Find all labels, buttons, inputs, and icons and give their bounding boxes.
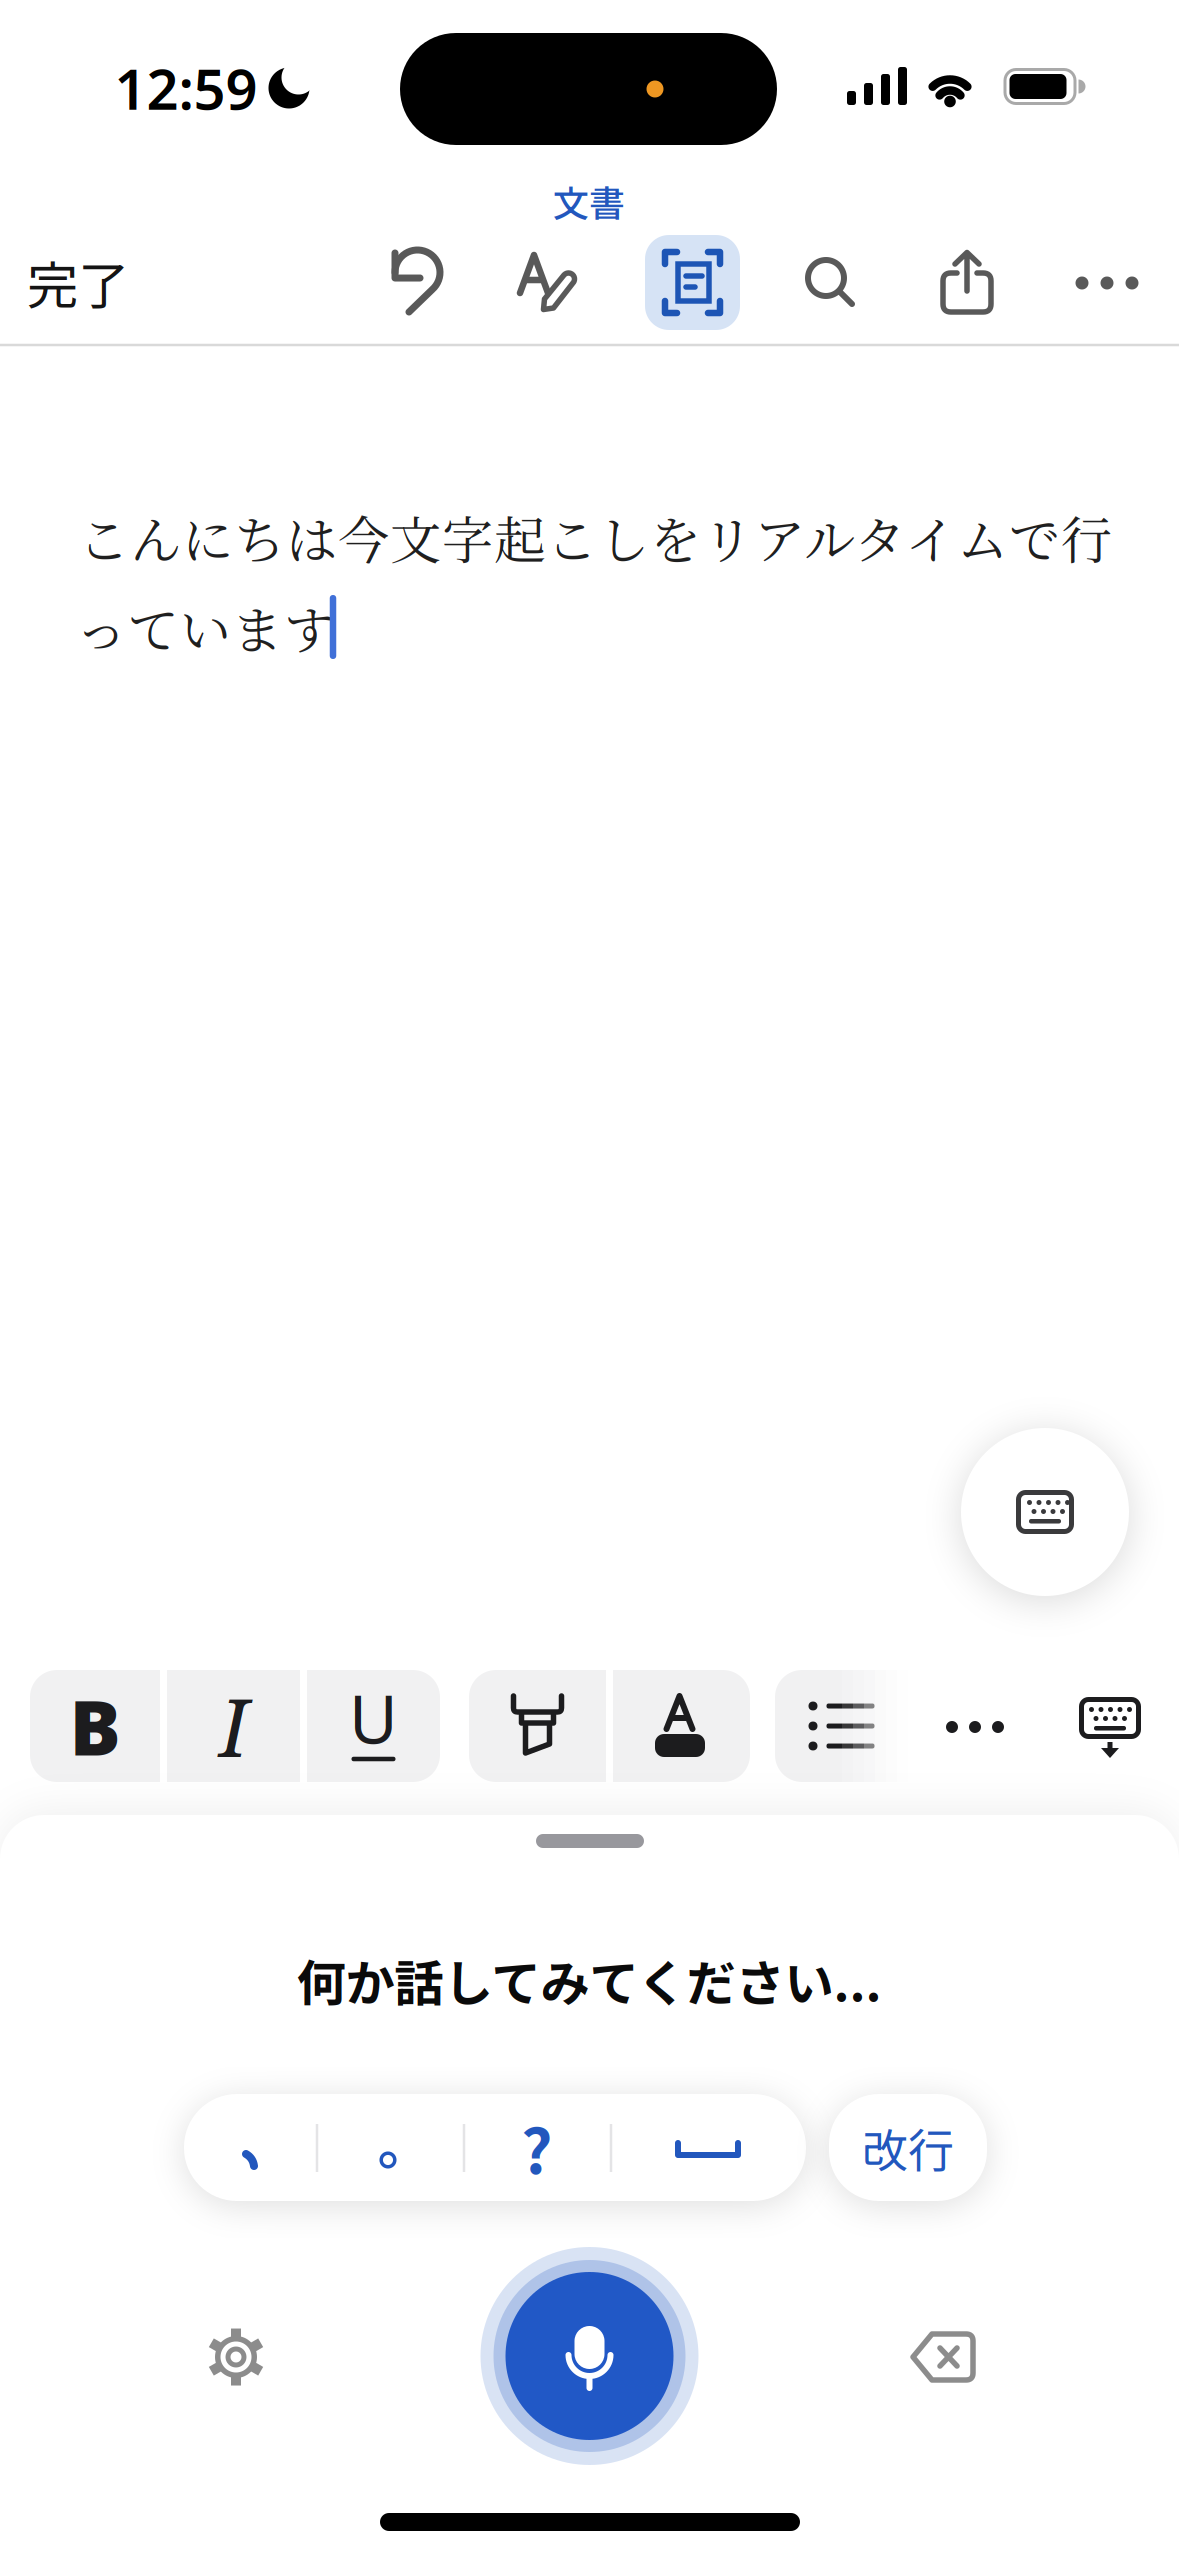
staticText: こんにちは今文字起こしをリアルタイムで行 [78,500,1112,574]
staticText: I [219,1671,248,1780]
button[interactable]: 設定 [201,2322,271,2392]
button[interactable]: 句点 [316,2107,460,2213]
staticText: 何か話してみてください... [296,1944,881,2016]
button[interactable]: 蛍光ペン [469,1670,606,1782]
button[interactable]: 音声入力 [480,2247,698,2465]
staticText: U [349,1673,398,1763]
button[interactable]: モバイルビュー [645,235,740,330]
staticText: 文書 [553,175,625,227]
button[interactable]: キーボードを表示 [961,1428,1129,1596]
button[interactable]: スペース [613,2097,803,2203]
button[interactable]: 改行 [829,2094,987,2201]
button[interactable]: B [30,1670,160,1782]
button[interactable]: 箇条書き [775,1670,908,1782]
button[interactable]: U [307,1670,440,1782]
staticText: 12:59 [114,50,257,126]
button[interactable]: その他 [1075,276,1139,290]
button[interactable]: 検索 [800,252,860,312]
button[interactable]: 書式 [517,251,589,315]
button[interactable]: キーボードを閉じる [1074,1696,1146,1762]
staticText: ? [521,2103,553,2191]
staticText: っています [75,590,334,664]
button[interactable]: I [167,1670,300,1782]
button[interactable]: その他の書式 [943,1720,1007,1734]
button[interactable]: フォントの色 [613,1670,750,1782]
button[interactable]: 完了 [13,247,143,317]
button[interactable]: ? [465,2094,609,2200]
staticText: 完了 [27,245,129,319]
button[interactable]: 削除 [910,2331,976,2383]
button[interactable]: 元に戻す [379,246,449,318]
button[interactable]: 共有 [939,249,995,315]
staticText: B [69,1674,120,1778]
button[interactable]: 読点 [185,2107,315,2213]
staticText: 改行 [862,2114,954,2181]
